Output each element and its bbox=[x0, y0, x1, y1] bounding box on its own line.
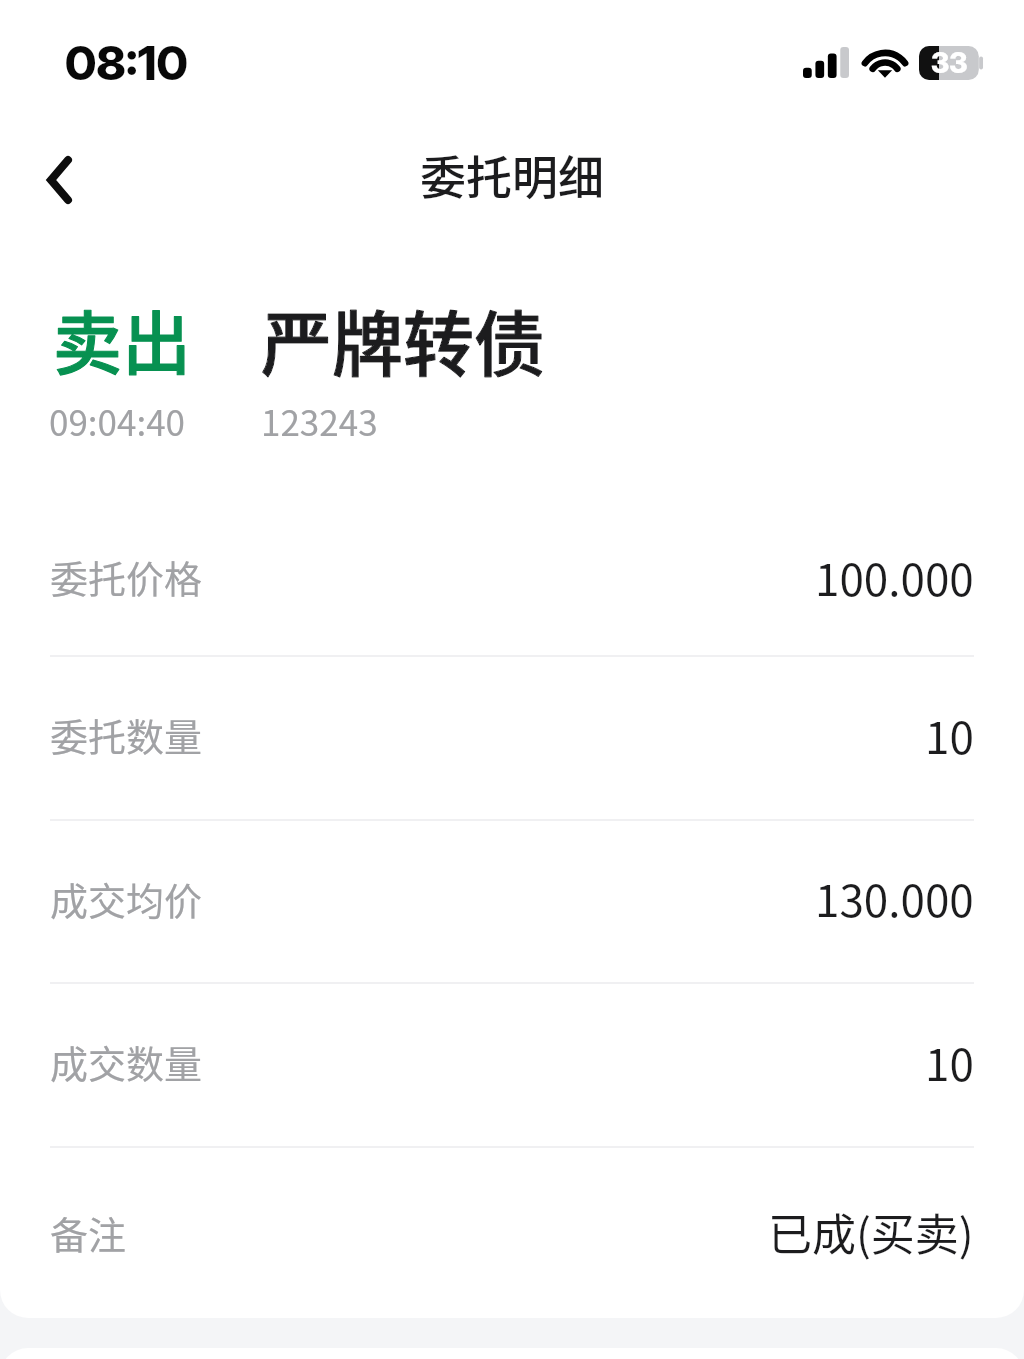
staticText: 123243 bbox=[261, 395, 378, 446]
staticText: 严牌转债 bbox=[261, 288, 546, 391]
staticText: 成交数量 bbox=[50, 1034, 203, 1089]
button[interactable]: 备注 bbox=[0, 1146, 1024, 1318]
staticText: 委托价格 bbox=[50, 549, 203, 604]
staticText: 卖出 bbox=[53, 289, 191, 389]
staticText: 委托数量 bbox=[50, 707, 203, 762]
staticText: 09:04:40 bbox=[49, 395, 186, 446]
button[interactable]: 成交数量 bbox=[0, 982, 1024, 1146]
button[interactable]: 委托价格 bbox=[0, 503, 1024, 655]
staticText: 卖出 bbox=[53, 289, 191, 389]
staticText: 严牌转债 bbox=[261, 288, 546, 391]
staticText: 100.000 bbox=[815, 545, 974, 609]
staticText: 33 bbox=[931, 45, 968, 80]
staticText: 成交均价 bbox=[50, 871, 203, 926]
staticText: 130.000 bbox=[815, 866, 974, 930]
staticText: 备注 bbox=[50, 1205, 127, 1260]
staticText: 已成(买卖) bbox=[768, 1200, 974, 1264]
button[interactable]: Back bbox=[4, 128, 114, 232]
button[interactable]: 委托数量 bbox=[0, 655, 1024, 819]
button[interactable]: 成交均价 bbox=[0, 819, 1024, 982]
staticText: 10 bbox=[925, 703, 974, 767]
staticText: 委托明细 bbox=[420, 141, 604, 208]
staticText: 10 bbox=[925, 1030, 974, 1094]
staticText: 08:10 bbox=[65, 34, 188, 91]
